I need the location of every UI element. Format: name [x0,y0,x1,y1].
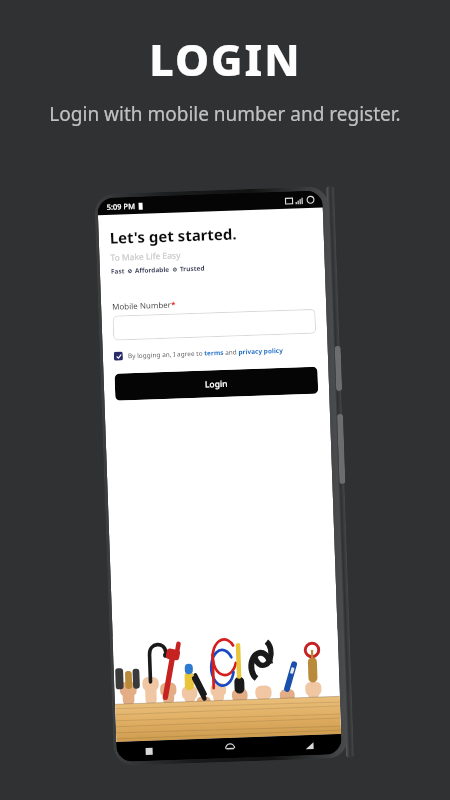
button[interactable] [112,309,316,341]
staticText: By logging an, I agree to terms and priv… [128,346,284,360]
staticText: To Make Life Easy [110,249,181,264]
staticText: Fast [111,266,125,276]
button[interactable]: Home [221,740,238,756]
button[interactable]: Back [301,737,318,753]
staticText: Trusted [180,263,205,273]
staticText: LOGIN [149,30,302,89]
staticText: Affordable [135,265,170,275]
staticText: Login [205,378,228,391]
staticText: 5:09 PM [106,201,136,212]
staticText: Let's get started. [109,223,237,248]
button[interactable]: Login [114,367,318,401]
staticText: * [171,299,176,310]
button[interactable]: Recent apps [140,742,157,759]
staticText: Mobile Number [112,299,171,312]
button[interactable]: By logging an, I agree to terms and priv… [114,346,284,361]
staticText: Login with mobile number and register. [49,101,401,127]
